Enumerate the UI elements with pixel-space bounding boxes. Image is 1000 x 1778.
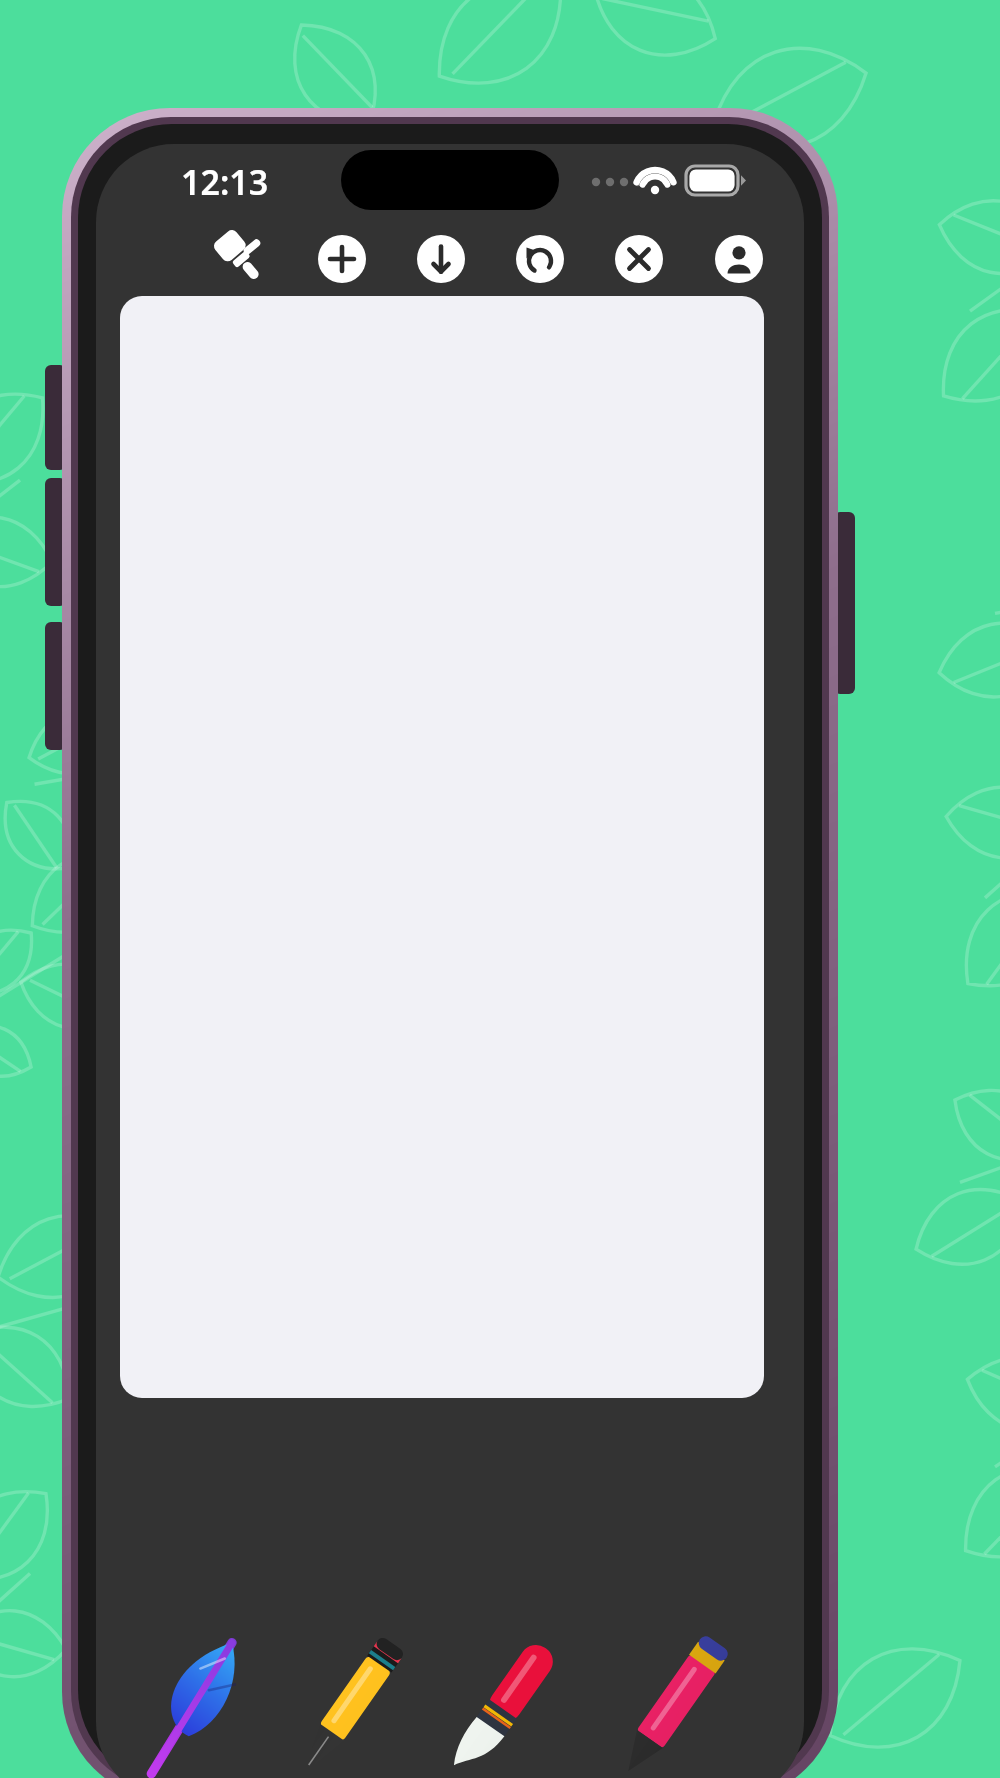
button[interactable]: Fountain pen: [294, 1638, 414, 1778]
button[interactable]: Pencil: [616, 1638, 736, 1778]
button[interactable]: Drawing canvas: [120, 296, 764, 1398]
button[interactable]: Brush tool: [211, 229, 271, 289]
button[interactable]: Undo: [516, 235, 564, 283]
button[interactable]: Add: [318, 235, 366, 283]
button[interactable]: Download: [417, 235, 465, 283]
button[interactable]: Quill pen: [140, 1638, 260, 1778]
staticText: 12:13: [181, 159, 269, 205]
button[interactable]: Close: [615, 235, 663, 283]
button[interactable]: Account: [715, 235, 763, 283]
button[interactable]: Paint brush: [448, 1638, 568, 1778]
